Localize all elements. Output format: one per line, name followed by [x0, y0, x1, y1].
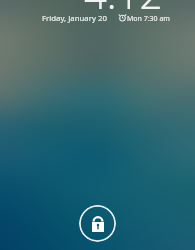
staticText: Mon 7:30 am — [127, 14, 170, 24]
button[interactable]: Unlock — [79, 205, 116, 242]
staticText: Friday, January 20 — [42, 13, 107, 24]
staticText: 4:12 — [84, 0, 163, 20]
